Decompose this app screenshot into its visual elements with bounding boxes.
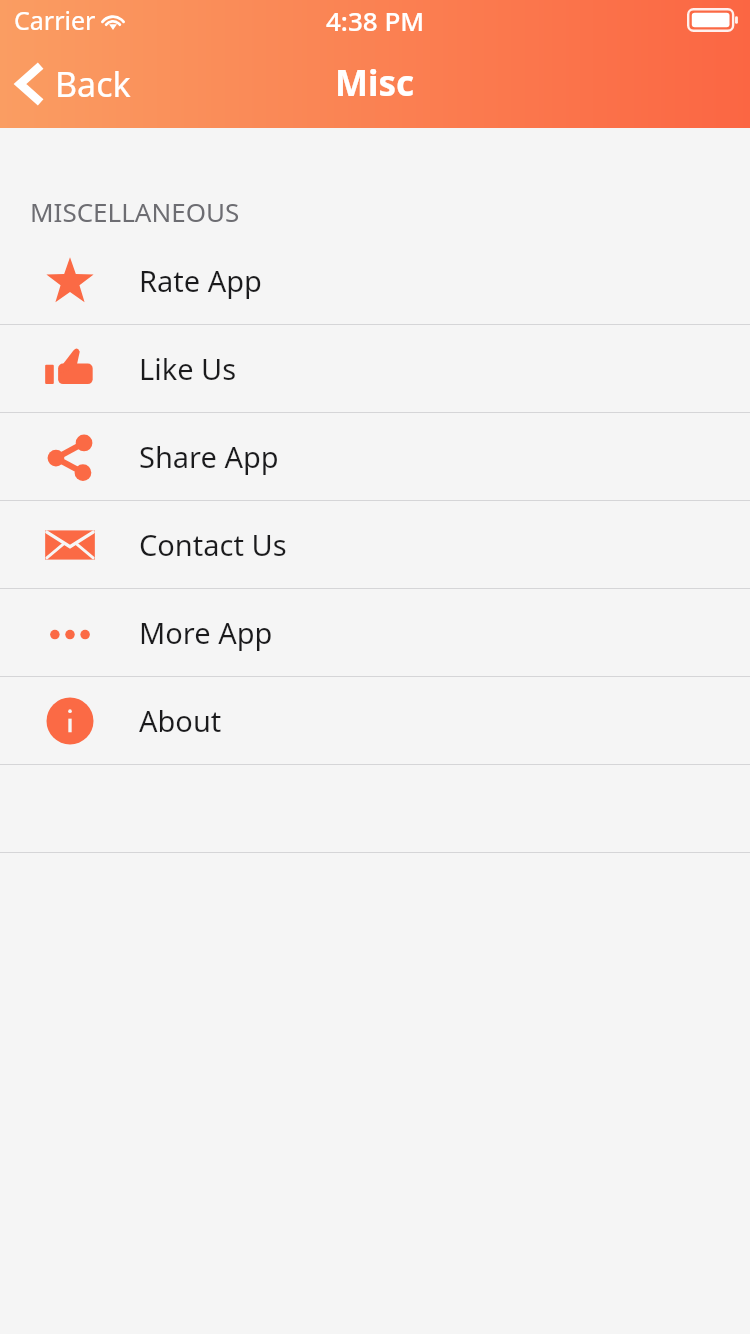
- staticText: 4:38 PM: [326, 3, 425, 38]
- staticText: Rate App: [139, 261, 262, 300]
- staticText: Contact Us: [139, 525, 287, 564]
- staticText: More App: [139, 613, 273, 652]
- button[interactable]: About: [0, 677, 750, 764]
- staticText: Misc: [335, 59, 415, 107]
- staticText: Like Us: [139, 349, 237, 388]
- button[interactable]: Share App: [0, 413, 750, 500]
- staticText: MISCELLANEOUS: [30, 194, 240, 229]
- staticText: About: [139, 701, 222, 740]
- button[interactable]: Contact Us: [0, 501, 750, 588]
- button[interactable]: Like Us: [0, 325, 750, 412]
- button[interactable]: Rate App: [0, 237, 750, 324]
- staticText: Share App: [139, 437, 279, 476]
- button[interactable]: Back: [0, 40, 151, 128]
- staticText: Carrier: [14, 3, 96, 37]
- button[interactable]: More App: [0, 589, 750, 676]
- staticText: Back: [55, 61, 131, 107]
